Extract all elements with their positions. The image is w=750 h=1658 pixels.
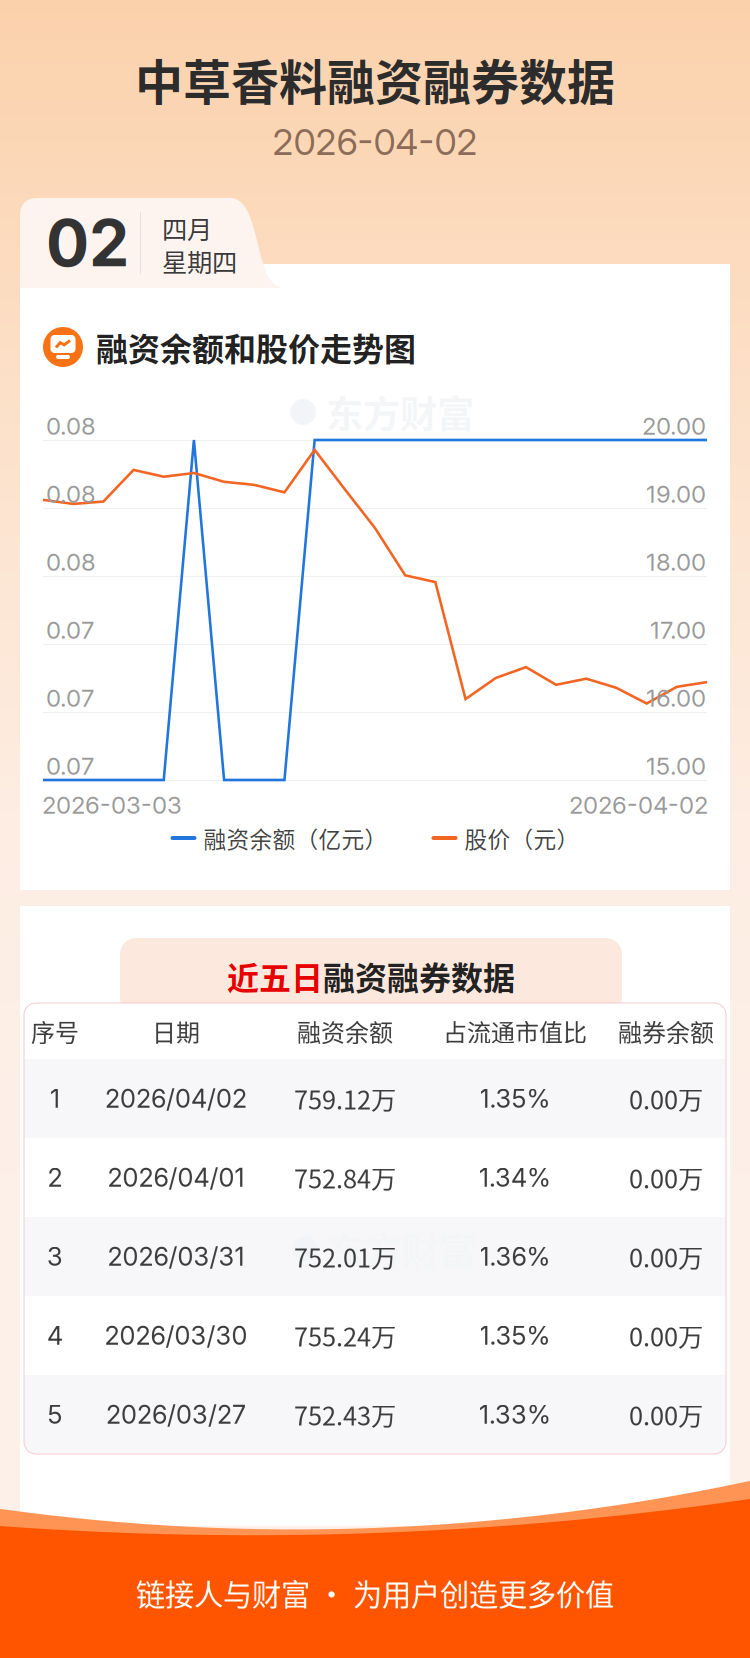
staticText: 序号	[31, 1014, 79, 1048]
staticText: 1.36%	[479, 1241, 550, 1272]
staticText: 15.00	[646, 751, 706, 780]
staticText: 0.00万	[629, 1238, 703, 1275]
staticText: 0.08	[46, 411, 96, 440]
staticText: 东方财富	[328, 1222, 476, 1276]
staticText: 融资余额和股价走势图	[96, 324, 416, 370]
staticText: 5	[47, 1399, 62, 1430]
staticText: 2026/04/01	[107, 1162, 244, 1193]
staticText: 2026/04/02	[105, 1083, 247, 1114]
staticText: 19.00	[646, 479, 706, 508]
staticText: 755.24万	[294, 1317, 396, 1354]
staticText: 17.00	[650, 615, 706, 644]
staticText: 20.00	[642, 411, 706, 440]
staticText: 融券余额	[618, 1014, 714, 1048]
staticText: 0.00万	[629, 1396, 703, 1433]
staticText: 0.07	[46, 615, 94, 644]
staticText: 融资融券数据	[323, 953, 515, 999]
staticText: 0.08	[46, 479, 96, 508]
staticText: 融资余额	[297, 1014, 393, 1048]
staticText: 星期四	[162, 243, 237, 279]
staticText: 0.00万	[629, 1080, 703, 1117]
staticText: 1.34%	[479, 1162, 551, 1193]
staticText: 752.84万	[294, 1159, 396, 1196]
staticText: 链接人与财富 · 为用户创造更多价值	[136, 1571, 614, 1614]
staticText: 4	[47, 1320, 63, 1351]
staticText: 东方财富	[326, 385, 474, 439]
staticText: 752.01万	[294, 1238, 396, 1275]
staticText: 2026-03-03	[42, 790, 182, 819]
staticText: 2026/03/30	[104, 1320, 247, 1351]
staticText: 0.00万	[629, 1317, 703, 1354]
staticText: 股价（元）	[464, 822, 579, 854]
staticText: 近五日	[227, 953, 323, 999]
staticText: 四月	[162, 210, 212, 246]
staticText: 759.12万	[294, 1080, 396, 1117]
staticText: 中草香料融资融券数据	[135, 44, 615, 114]
staticText: 1	[50, 1083, 60, 1114]
staticText: 2026/03/31	[107, 1241, 244, 1272]
staticText: 2026-04-02	[569, 790, 708, 819]
staticText: 日期	[152, 1014, 200, 1048]
staticText: 1.35%	[479, 1320, 550, 1351]
staticText: 0.07	[46, 751, 94, 780]
staticText: 2026-04-02	[272, 120, 477, 164]
staticText: 2	[47, 1162, 62, 1193]
staticText: 16.00	[646, 683, 706, 712]
staticText: 1.33%	[479, 1399, 551, 1430]
staticText: 3	[47, 1241, 63, 1272]
staticText: 2026/03/27	[106, 1399, 246, 1430]
staticText: 02	[46, 204, 129, 282]
staticText: 占流通市值比	[443, 1014, 587, 1048]
staticText: 752.43万	[294, 1396, 396, 1433]
staticText: 0.00万	[629, 1159, 703, 1196]
staticText: 0.08	[46, 547, 96, 576]
staticText: 融资余额（亿元）	[203, 822, 387, 854]
staticText: 1.35%	[479, 1083, 550, 1114]
staticText: 18.00	[646, 547, 706, 576]
staticText: 0.07	[46, 683, 94, 712]
